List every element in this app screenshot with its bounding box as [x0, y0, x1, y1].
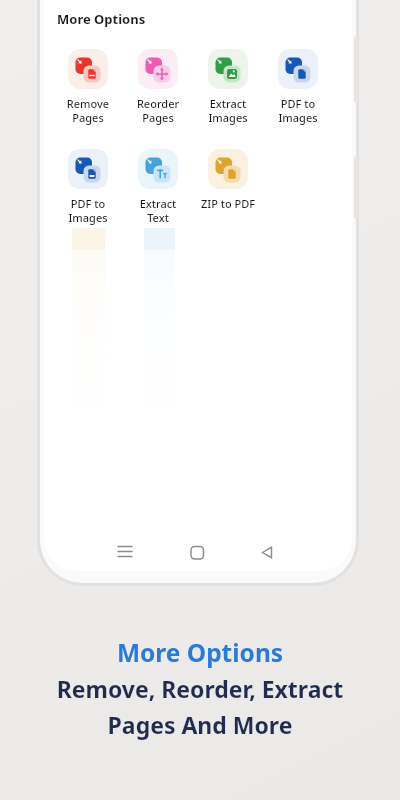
button[interactable]: Extract Text [123, 149, 193, 225]
staticText: More Options [57, 10, 146, 28]
staticText: Remove, Reorder, Extract [0, 673, 400, 704]
staticText: Extract Images [193, 96, 263, 125]
staticText: Remove Pages [53, 96, 123, 125]
staticText: PDF to Images [53, 196, 123, 225]
button[interactable]: More Options [0, 636, 400, 669]
staticText: Pages And More [0, 709, 400, 740]
staticText: ZIP to PDF [193, 196, 263, 211]
button[interactable]: PDF to Images [263, 49, 333, 125]
button[interactable]: Reorder Pages [123, 49, 193, 125]
button[interactable]: Remove Pages [53, 49, 123, 125]
staticText: Reorder Pages [123, 96, 193, 125]
button[interactable]: PDF to Images [53, 149, 123, 225]
button[interactable]: Extract Images [193, 49, 263, 125]
button[interactable]: ZIP to PDF [193, 149, 263, 211]
staticText: PDF to Images [263, 96, 333, 125]
staticText: Extract Text [123, 196, 193, 225]
